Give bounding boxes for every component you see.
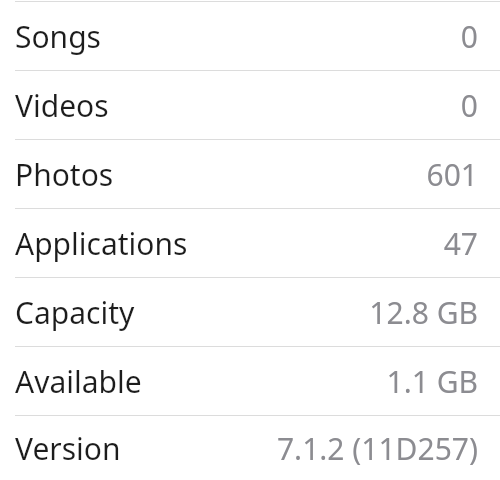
staticText: 601	[426, 154, 478, 195]
staticText: 47	[443, 223, 478, 264]
button[interactable]: Version	[0, 416, 500, 480]
button[interactable]: Songs	[0, 2, 500, 70]
staticText: Available	[15, 361, 142, 402]
staticText: Capacity	[15, 292, 135, 333]
staticText: Applications	[15, 223, 188, 264]
button[interactable]: Available	[0, 347, 500, 415]
staticText: Version	[15, 428, 121, 469]
button[interactable]: Photos	[0, 140, 500, 208]
staticText: 0	[460, 85, 478, 126]
button[interactable]: Capacity	[0, 278, 500, 346]
staticText: 7.1.2 (11D257)	[276, 428, 478, 469]
staticText: Photos	[15, 154, 114, 195]
button[interactable]: Videos	[0, 71, 500, 139]
staticText: 1.1 GB	[386, 361, 478, 402]
button[interactable]: Applications	[0, 209, 500, 277]
staticText: 0	[460, 16, 478, 57]
staticText: Songs	[15, 16, 101, 57]
staticText: 12.8 GB	[369, 292, 478, 333]
staticText: Videos	[15, 85, 109, 126]
